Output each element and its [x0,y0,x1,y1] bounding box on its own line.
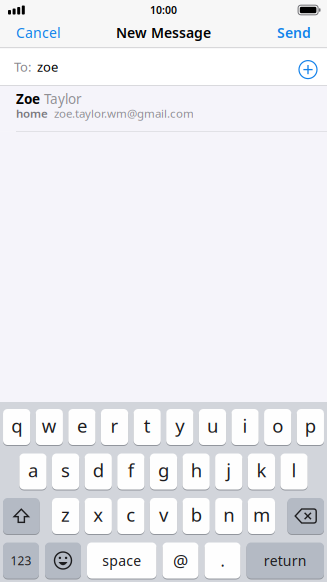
button[interactable]: c [117,498,144,534]
staticText: space [102,551,141,570]
staticText: c [126,502,135,527]
staticText: home [16,105,48,121]
staticText: s [61,457,70,483]
staticText: t [144,413,151,438]
staticText: New Message [116,23,211,42]
staticText: Zoe [16,90,40,108]
staticText: x [93,502,103,527]
button[interactable]: space [87,542,156,578]
button[interactable]: u [199,409,226,445]
staticText: zoe [37,58,58,76]
button[interactable]: k [248,453,275,489]
staticText: v [159,502,168,527]
button[interactable]: a [19,453,47,489]
button[interactable]: g [150,453,177,489]
staticText: n [223,502,234,527]
staticText: g [158,457,169,483]
staticText: l [291,457,296,483]
staticText: e [77,413,87,438]
staticText: zoe.taylor.wm@gmail.com [48,105,194,121]
button[interactable]: Delete [287,498,324,534]
staticText: f [128,457,134,483]
button[interactable]: Emoji [45,542,81,578]
staticText: y [175,413,184,438]
staticText: To: [14,58,31,76]
button[interactable]: i [231,409,259,445]
staticText: Cancel [16,23,61,42]
button[interactable]: m [248,498,275,534]
button[interactable]: . [204,542,240,578]
button[interactable]: e [68,409,96,445]
staticText: i [243,413,248,438]
staticText: . [220,550,224,571]
button[interactable]: t [133,409,161,445]
button[interactable]: f [117,453,144,489]
staticText: p [305,413,316,438]
button[interactable]: Add Contact [299,58,327,76]
button[interactable]: Zoe [0,86,327,131]
button[interactable]: b [182,498,210,534]
staticText: m [253,502,270,527]
button[interactable]: p [297,409,324,445]
button[interactable]: h [182,453,210,489]
staticText: @ [173,549,188,572]
button[interactable]: o [264,409,291,445]
button[interactable]: j [215,453,242,489]
button[interactable]: return [246,542,324,578]
staticText: return [264,551,307,570]
button[interactable]: d [85,453,112,489]
button[interactable]: Shift [3,498,40,534]
staticText: h [191,457,202,483]
staticText: b [191,502,202,527]
staticText: w [42,413,57,438]
button[interactable]: s [52,453,79,489]
staticText: o [272,413,283,438]
button[interactable]: q [3,409,30,445]
button[interactable]: n [215,498,242,534]
button[interactable]: z [52,498,79,534]
button[interactable]: l [280,453,308,489]
staticText: q [11,413,22,438]
button[interactable]: v [150,498,177,534]
staticText: u [207,413,218,438]
staticText: r [111,413,119,438]
button[interactable]: r [101,409,128,445]
staticText: 10:00 [150,3,177,17]
button[interactable]: 123 [3,542,39,578]
button[interactable]: @ [162,542,198,578]
staticText: Taylor [40,90,82,108]
button[interactable]: Send [277,23,327,42]
staticText: 123 [10,552,31,569]
button[interactable]: y [166,409,193,445]
button[interactable]: w [36,409,63,445]
staticText: k [256,457,266,483]
staticText: d [93,457,104,483]
button[interactable]: x [85,498,112,534]
staticText: z [61,502,70,527]
button[interactable]: Cancel [0,23,61,42]
staticText: a [28,457,38,483]
staticText: Send [277,23,311,42]
staticText: j [226,457,231,483]
